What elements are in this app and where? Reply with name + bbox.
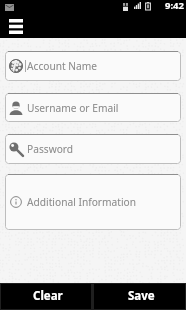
button[interactable]: Password	[5, 134, 181, 164]
button[interactable]: Account Name	[5, 51, 181, 81]
staticText: Clear	[33, 288, 63, 304]
staticText: 9:42	[165, 0, 184, 12]
staticText: Save	[128, 288, 155, 304]
button[interactable]: Save	[94, 284, 185, 309]
staticText: Password	[27, 142, 74, 156]
staticText: Account Name	[27, 59, 98, 73]
staticText: Additional Information	[27, 195, 137, 209]
button[interactable]: Additional Information	[5, 174, 181, 230]
button[interactable]: Clear	[1, 284, 91, 309]
button[interactable]: Open navigation menu	[0, 13, 31, 38]
staticText: Username or Email	[27, 101, 119, 115]
button[interactable]: Username or Email	[5, 93, 181, 122]
